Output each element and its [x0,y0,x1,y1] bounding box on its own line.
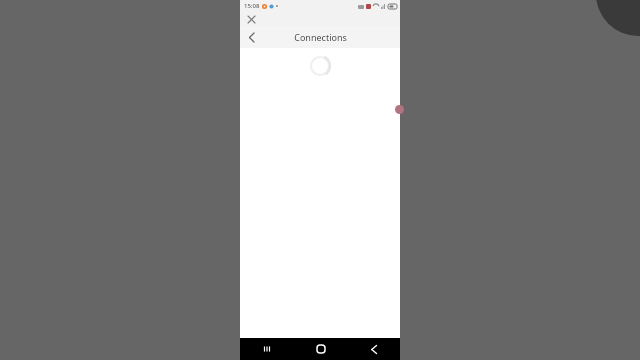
button[interactable]: Back [243,29,259,45]
button[interactable]: Back [347,338,400,360]
button[interactable]: Home [294,338,347,360]
button[interactable]: Close [244,12,258,26]
button[interactable]: Recent apps [240,338,294,360]
staticText: 15:08 [244,2,260,10]
staticText: Connections [294,31,347,43]
